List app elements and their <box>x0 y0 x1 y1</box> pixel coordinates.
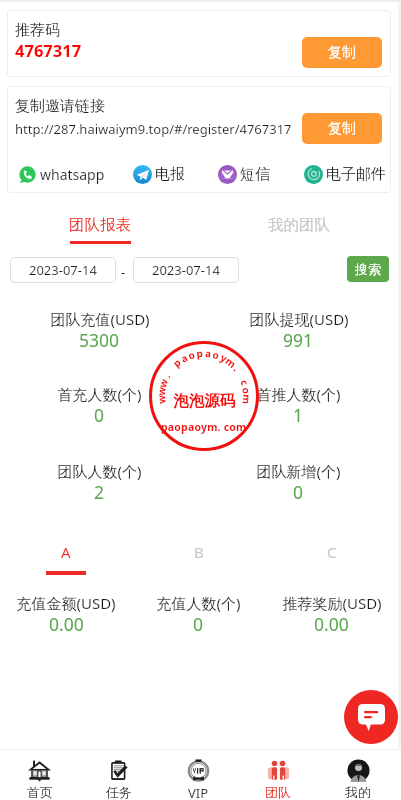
staticText: 2023-07-14 <box>152 261 220 279</box>
button[interactable]: C <box>265 542 398 576</box>
staticText: 充值人数(个) <box>156 593 241 613</box>
staticText: - <box>121 263 126 281</box>
button[interactable]: whatsapp <box>18 165 105 184</box>
staticText: 电报 <box>155 165 185 184</box>
button[interactable]: 复制 <box>302 113 382 144</box>
staticText: VIP <box>188 784 209 800</box>
staticText: 5300 <box>79 328 120 352</box>
staticText: 团队新增(个) <box>256 461 341 481</box>
staticText: 短信 <box>240 165 270 184</box>
staticText: 首页 <box>27 784 53 800</box>
staticText: 团队 <box>265 784 291 800</box>
button[interactable]: 我的团队 <box>199 215 398 251</box>
staticText: 搜索 <box>355 261 381 277</box>
staticText: 复制 <box>328 120 356 138</box>
staticText: 0 <box>293 480 304 504</box>
staticText: 0 <box>193 612 204 636</box>
staticText: 充值金额(USD) <box>16 593 116 613</box>
button[interactable]: 我的 <box>318 750 398 800</box>
button[interactable]: VIP <box>158 750 238 800</box>
staticText: 泡泡源码 <box>173 391 235 411</box>
staticText: A <box>61 542 71 562</box>
staticText: B <box>194 542 204 562</box>
button[interactable]: 电报 <box>133 165 185 184</box>
staticText: C <box>327 542 337 562</box>
staticText: 首推人数(个) <box>256 384 341 404</box>
staticText: 我的团队 <box>268 215 330 235</box>
button[interactable]: 2023-07-14 <box>10 257 116 283</box>
staticText: 首充人数(个) <box>57 384 142 404</box>
staticText: 推荐奖励(USD) <box>282 593 382 613</box>
staticText: 1 <box>293 403 304 427</box>
staticText: whatsapp <box>40 165 105 184</box>
staticText: 0.00 <box>49 612 84 636</box>
button[interactable]: 短信 <box>218 165 270 184</box>
staticText: 任务 <box>106 784 132 800</box>
staticText: http://287.haiwaiym9.top/#/register/4767… <box>15 120 292 138</box>
staticText: 团队报表 <box>69 215 131 235</box>
staticText: 我的 <box>345 784 371 800</box>
staticText: 推荐码 <box>15 21 60 40</box>
staticText: 0 <box>94 403 105 427</box>
staticText: 团队提现(USD) <box>249 309 349 329</box>
staticText: 电子邮件 <box>326 165 386 184</box>
button[interactable]: A <box>0 542 132 576</box>
button[interactable]: 首页 <box>0 750 79 800</box>
button[interactable]: 团队 <box>238 750 318 800</box>
button[interactable]: 电子邮件 <box>304 165 386 184</box>
button[interactable]: 复制 <box>302 37 382 68</box>
staticText: paopaoym. com <box>161 420 247 434</box>
button[interactable]: B <box>132 542 265 576</box>
button[interactable]: 任务 <box>79 750 158 800</box>
staticText: 团队人数(个) <box>57 461 142 481</box>
button[interactable]: Customer service chat <box>344 690 398 744</box>
staticText: 4767317 <box>15 39 82 61</box>
staticText: 复制邀请链接 <box>15 97 105 116</box>
staticText: 991 <box>283 328 314 352</box>
button[interactable]: 2023-07-14 <box>133 257 239 283</box>
staticText: 2023-07-14 <box>29 261 97 279</box>
staticText: 复制 <box>328 44 356 62</box>
button[interactable]: 搜索 <box>347 256 389 282</box>
button[interactable]: 团队报表 <box>0 215 199 251</box>
staticText: 0.00 <box>314 612 349 636</box>
staticText: 2 <box>94 480 105 504</box>
staticText: 团队充值(USD) <box>50 309 150 329</box>
